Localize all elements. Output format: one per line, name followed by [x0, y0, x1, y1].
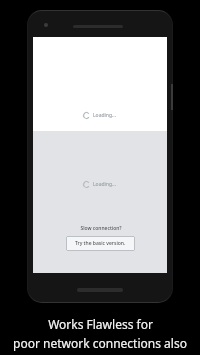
- button[interactable]: Try the basic version.: [66, 236, 135, 251]
- staticText: Try the basic version.: [75, 240, 126, 247]
- staticText: Slow connection?: [80, 225, 122, 232]
- staticText: Loading...: [93, 112, 117, 119]
- staticText: poor network connections also: [13, 335, 187, 351]
- staticText: Works Flawless for: [48, 316, 153, 332]
- staticText: Loading...: [93, 181, 117, 188]
